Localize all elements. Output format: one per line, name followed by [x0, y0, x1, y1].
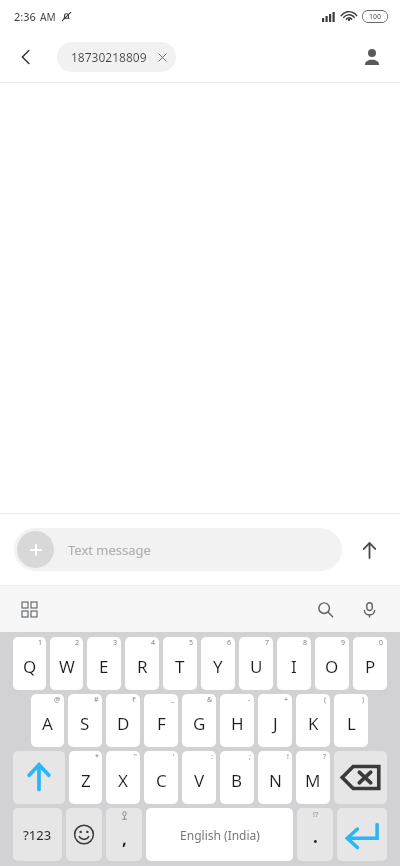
button[interactable]: Backspace [334, 751, 387, 804]
staticText: U [250, 655, 263, 678]
button[interactable]: Search [308, 592, 342, 626]
staticText: M [305, 769, 321, 792]
staticText: ; [249, 752, 251, 762]
button[interactable]: 6 [201, 637, 235, 690]
button[interactable]: Text message [14, 528, 342, 571]
staticText: V [194, 769, 205, 792]
staticText: K [308, 712, 319, 735]
staticText: J [273, 712, 278, 735]
button[interactable]: Emoji [66, 808, 102, 861]
staticText: " [134, 752, 137, 762]
button[interactable]: 9 [315, 637, 349, 690]
staticText: 4 [151, 638, 156, 648]
staticText: 0 [379, 638, 384, 648]
button[interactable]: Keyboard options [12, 592, 46, 626]
staticText: X [118, 769, 128, 792]
staticText: English (India) [180, 827, 260, 843]
button[interactable]: 2 [50, 637, 83, 690]
button[interactable]: Contact [352, 37, 392, 77]
button[interactable]: Back [6, 37, 46, 77]
staticText: 1 [38, 638, 43, 648]
button[interactable]: _ [144, 694, 178, 747]
button[interactable]: : [182, 751, 216, 804]
staticText: 5 [189, 638, 194, 648]
button[interactable]: ) [334, 694, 368, 747]
staticText: R [137, 655, 148, 678]
staticText: . [313, 825, 318, 848]
staticText: S [80, 712, 90, 735]
staticText: + [284, 695, 289, 705]
staticText: AM [40, 10, 56, 24]
staticText: T [175, 655, 185, 678]
staticText: ! [287, 752, 289, 762]
staticText: O [325, 655, 339, 678]
staticText: 100 [369, 12, 382, 22]
staticText: & [207, 695, 213, 705]
staticText: B [231, 769, 243, 792]
button[interactable]: * [69, 751, 102, 804]
button[interactable]: 1 [13, 637, 46, 690]
staticText: Y [213, 655, 223, 678]
staticText: ? [323, 752, 327, 762]
staticText: 9 [341, 638, 346, 648]
staticText: F [157, 712, 166, 735]
button[interactable]: ₹ [106, 694, 140, 747]
staticText: , [122, 827, 127, 850]
staticText: 8 [303, 638, 308, 648]
staticText: ₹ [132, 695, 137, 705]
button[interactable]: ? [296, 751, 330, 804]
button[interactable]: # [68, 694, 102, 747]
button[interactable]: 8 [277, 637, 311, 690]
button[interactable]: ?123 [13, 808, 62, 861]
staticText: : [211, 752, 213, 762]
button[interactable]: - [220, 694, 254, 747]
button[interactable]: & [182, 694, 216, 747]
staticText: @ [54, 695, 61, 705]
staticText: H [231, 712, 244, 735]
button[interactable]: 7 [239, 637, 273, 690]
staticText: A [42, 712, 53, 735]
button[interactable]: 3 [87, 637, 121, 690]
staticText: G [193, 712, 206, 735]
button[interactable]: Voice input [352, 592, 386, 626]
staticText: ?123 [23, 826, 52, 844]
button[interactable]: !? [297, 808, 333, 861]
staticText: I [291, 655, 297, 678]
button[interactable]: English (India) [146, 808, 293, 861]
staticText: _ [171, 695, 175, 705]
staticText: ' [173, 752, 175, 762]
button[interactable]: ( [296, 694, 330, 747]
button[interactable]: Send [348, 529, 390, 571]
button[interactable]: 4 [125, 637, 159, 690]
staticText: 2:36 [14, 9, 36, 24]
button[interactable]: + [258, 694, 292, 747]
staticText: W [59, 655, 75, 678]
staticText: E [99, 655, 109, 678]
button[interactable]: @ [31, 694, 64, 747]
staticText: L [347, 712, 356, 735]
button[interactable]: ' [144, 751, 178, 804]
staticText: D [117, 712, 130, 735]
button[interactable]: 5 [163, 637, 197, 690]
staticText: 18730218809 [71, 49, 147, 65]
button[interactable]: " [106, 751, 140, 804]
button[interactable]: , [106, 808, 142, 861]
staticText: ) [362, 695, 365, 705]
button[interactable]: Enter [337, 808, 387, 861]
button[interactable]: 0 [353, 637, 387, 690]
staticText: ( [324, 695, 327, 705]
staticText: Text message [68, 541, 151, 559]
staticText: 6 [227, 638, 232, 648]
button[interactable]: Shift [13, 751, 65, 804]
staticText: P [365, 655, 376, 678]
staticText: Q [23, 655, 37, 678]
staticText: Z [81, 769, 91, 792]
button[interactable]: ! [258, 751, 292, 804]
button[interactable]: 18730218809 [57, 42, 176, 72]
staticText: 2 [75, 638, 80, 648]
button[interactable]: ; [220, 751, 254, 804]
staticText: N [269, 769, 282, 792]
staticText: - [248, 695, 251, 705]
staticText: C [156, 769, 167, 792]
staticText: !? [313, 810, 318, 820]
